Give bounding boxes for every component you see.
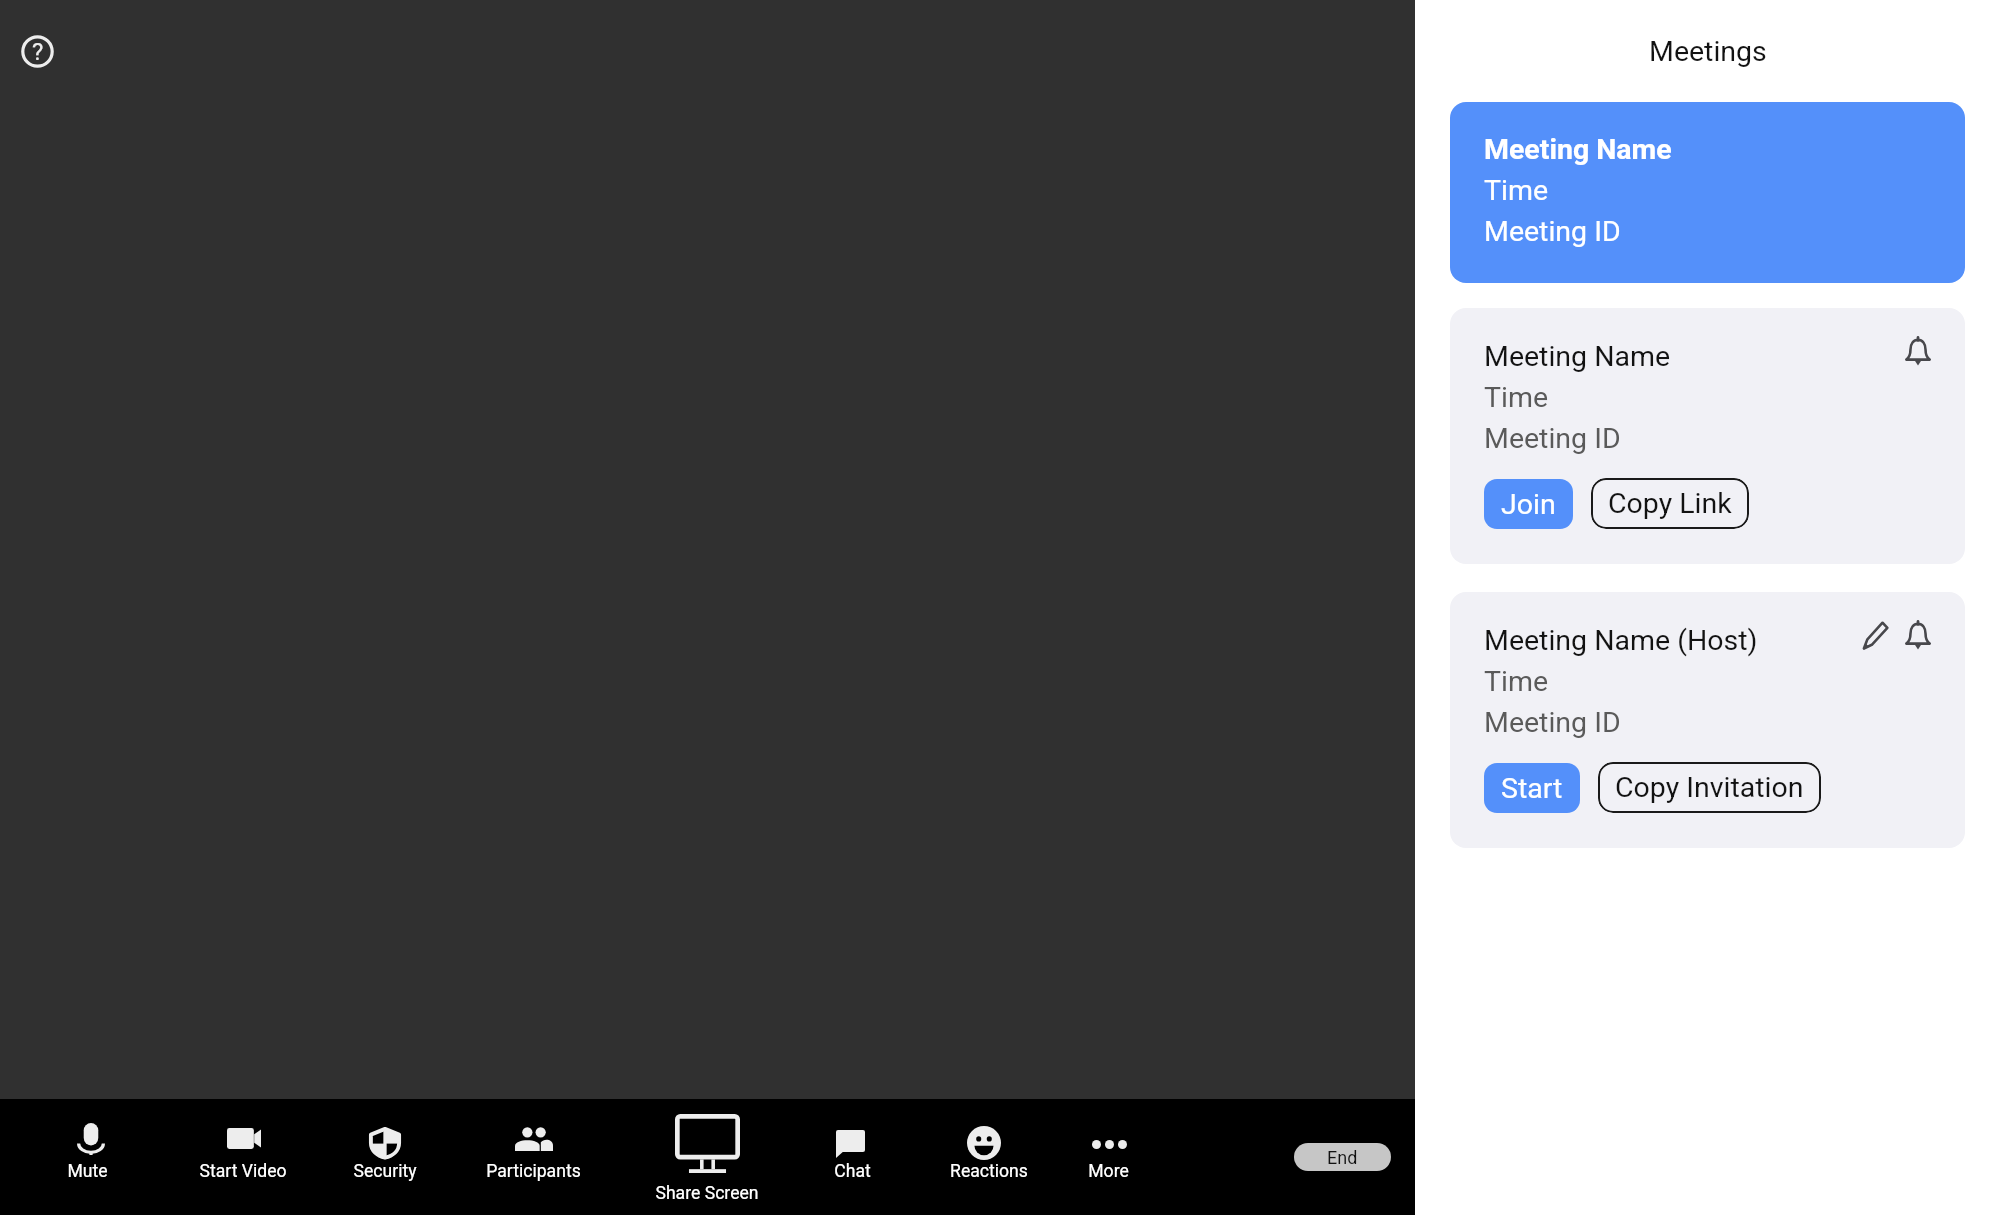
button[interactable]: Meeting Name (1450, 102, 1965, 283)
staticText: Meeting Name (1484, 133, 1672, 166)
button[interactable]: Join (1484, 479, 1573, 529)
button[interactable]: Reactions (924, 1099, 1044, 1215)
staticText: Share Screen (655, 1183, 759, 1204)
button[interactable]: Edit (1862, 621, 1889, 650)
staticText: More (1088, 1161, 1129, 1182)
staticText: Meetings (1649, 35, 1767, 68)
staticText: Start Video (199, 1161, 287, 1182)
button[interactable]: More (1053, 1099, 1165, 1215)
button[interactable]: Chat (796, 1099, 904, 1215)
button[interactable]: Notifications (1905, 621, 1931, 650)
staticText: Security (353, 1161, 417, 1182)
staticText: Meeting ID (1484, 706, 1621, 739)
staticText: Time (1484, 381, 1549, 414)
staticText: Mute (67, 1161, 108, 1182)
staticText: Reactions (950, 1161, 1028, 1182)
staticText: Participants (486, 1161, 581, 1182)
button[interactable]: Meeting Name (Host) (1450, 592, 1965, 848)
staticText: Start (1501, 772, 1563, 805)
staticText: Copy Link (1608, 487, 1732, 520)
button[interactable]: Share Screen (621, 1099, 793, 1215)
button[interactable]: Meeting Name (1450, 308, 1965, 564)
staticText: Join (1501, 488, 1556, 521)
button[interactable]: Help (21, 35, 54, 68)
staticText: ? (32, 38, 44, 66)
button[interactable]: Participants (470, 1099, 598, 1215)
staticText: Meeting ID (1484, 422, 1621, 455)
button[interactable]: Start Video (182, 1099, 306, 1215)
staticText: Time (1484, 665, 1549, 698)
button[interactable]: Notifications (1905, 337, 1931, 366)
staticText: Chat (834, 1161, 871, 1182)
button[interactable]: Mute (31, 1099, 151, 1215)
staticText: Meeting Name (Host) (1484, 624, 1758, 657)
button[interactable]: Start (1484, 763, 1580, 813)
button[interactable]: Copy Link (1591, 478, 1749, 529)
staticText: Time (1484, 174, 1549, 207)
button[interactable]: Copy Invitation (1598, 762, 1821, 813)
staticText: Meeting Name (1484, 340, 1671, 373)
staticText: Meeting ID (1484, 215, 1621, 248)
button[interactable]: End (1294, 1143, 1391, 1171)
staticText: Copy Invitation (1615, 771, 1804, 804)
staticText: End (1327, 1147, 1358, 1168)
button[interactable]: Security (327, 1099, 443, 1215)
